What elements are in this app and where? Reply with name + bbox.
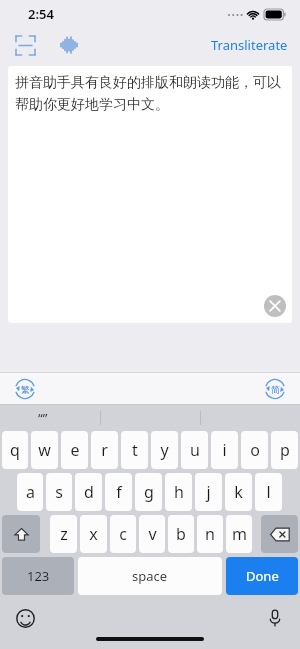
staticText: 拼音助手具有良好的排版和朗读功能，可以帮助你更好地学习中文。: [15, 74, 285, 113]
staticText: h: [174, 481, 184, 503]
button[interactable]: n: [197, 515, 223, 553]
button[interactable]: s: [46, 473, 72, 511]
button[interactable]: h: [165, 473, 192, 511]
staticText: s: [55, 481, 63, 503]
staticText: a: [26, 481, 35, 503]
button[interactable]: space: [78, 557, 222, 595]
staticText: v: [148, 523, 157, 545]
button[interactable]: Dictation: [262, 605, 288, 631]
staticText: q: [10, 439, 20, 461]
staticText: 繁: [21, 384, 30, 395]
staticText: 123: [27, 567, 50, 585]
staticText: 2:54: [28, 5, 54, 23]
staticText: j: [206, 481, 211, 503]
staticText: p: [280, 439, 290, 461]
button[interactable]: b: [168, 515, 194, 553]
button[interactable]: 123: [2, 557, 74, 595]
button[interactable]: i: [211, 431, 238, 469]
staticText: “”: [38, 409, 48, 427]
button[interactable]: f: [105, 473, 132, 511]
staticText: k: [234, 481, 243, 503]
button[interactable]: Clear text: [264, 295, 286, 317]
button[interactable]: Transliterate: [209, 32, 290, 58]
staticText: space: [132, 567, 168, 585]
staticText: Transliterate: [211, 36, 288, 54]
staticText: m: [232, 523, 247, 545]
button[interactable]: Convert to 繁: [12, 376, 38, 402]
staticText: z: [60, 523, 68, 545]
button[interactable]: j: [195, 473, 222, 511]
staticText: r: [101, 439, 108, 461]
button[interactable]: Delete: [261, 515, 298, 553]
staticText: d: [84, 481, 94, 503]
button[interactable]: a: [17, 473, 43, 511]
button[interactable]: t: [121, 431, 148, 469]
staticText: y: [160, 439, 169, 461]
staticText: Done: [246, 567, 279, 585]
staticText: x: [89, 523, 98, 545]
button[interactable]: l: [255, 473, 282, 511]
button[interactable]: Shift: [2, 515, 40, 553]
button[interactable]: o: [241, 431, 268, 469]
button[interactable]: d: [75, 473, 102, 511]
button[interactable]: g: [135, 473, 162, 511]
button[interactable]: e: [61, 431, 88, 469]
staticText: b: [176, 523, 186, 545]
button[interactable]: Convert to 简: [262, 376, 288, 402]
button[interactable]: Read aloud: [54, 30, 84, 60]
button[interactable]: 拼音助手具有良好的排版和朗读功能，可以帮助你更好地学习中文。: [8, 66, 292, 323]
button[interactable]: p: [271, 431, 298, 469]
staticText: o: [250, 439, 260, 461]
staticText: i: [222, 439, 227, 461]
button[interactable]: z: [50, 515, 77, 553]
button[interactable]: x: [80, 515, 107, 553]
staticText: g: [144, 481, 154, 503]
button[interactable]: r: [91, 431, 118, 469]
button[interactable]: y: [151, 431, 178, 469]
button[interactable]: Done: [226, 557, 298, 595]
button[interactable]: k: [225, 473, 252, 511]
button[interactable]: m: [226, 515, 252, 553]
button[interactable]: v: [139, 515, 165, 553]
staticText: c: [119, 523, 127, 545]
staticText: t: [132, 439, 138, 461]
button[interactable]: Scan text: [10, 30, 40, 60]
button[interactable]: c: [110, 515, 136, 553]
staticText: n: [205, 523, 215, 545]
button[interactable]: q: [2, 431, 28, 469]
button[interactable]: w: [31, 431, 58, 469]
staticText: f: [116, 481, 122, 503]
button[interactable]: u: [181, 431, 208, 469]
staticText: 简: [271, 384, 280, 395]
button[interactable]: Emoji: [12, 605, 38, 631]
staticText: e: [70, 439, 80, 461]
staticText: l: [266, 481, 271, 503]
staticText: u: [190, 439, 200, 461]
staticText: w: [38, 439, 51, 461]
